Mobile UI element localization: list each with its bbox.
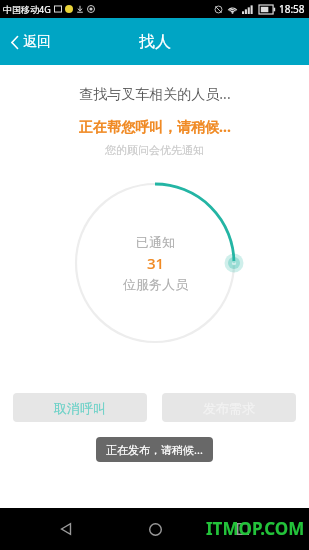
staticText: 中国移动4G — [3, 3, 51, 15]
button[interactable]: 取消呼叫 — [13, 393, 147, 422]
staticText: 您的顾问会优先通知 — [105, 143, 204, 157]
staticText: 返回 — [23, 33, 51, 51]
button[interactable]: Home — [133, 508, 177, 550]
staticText: 取消呼叫 — [54, 400, 106, 416]
staticText: 31 — [147, 253, 165, 273]
staticText: 正在发布，请稍候... — [106, 442, 203, 457]
staticText: 找人 — [139, 32, 171, 52]
staticText: 发布需求 — [203, 400, 255, 416]
staticText: 正在帮您呼叫，请稍候... — [79, 117, 231, 136]
staticText: 查找与叉车相关的人员... — [79, 84, 231, 103]
staticText: 已通知 — [136, 234, 175, 250]
staticText: ITMOP.COM — [206, 517, 305, 540]
staticText: 18:58 — [279, 2, 305, 16]
button[interactable]: Back — [44, 508, 88, 550]
button[interactable]: 返回 — [0, 25, 65, 59]
staticText: 位服务人员 — [123, 276, 188, 292]
button[interactable]: Recents — [221, 508, 265, 550]
